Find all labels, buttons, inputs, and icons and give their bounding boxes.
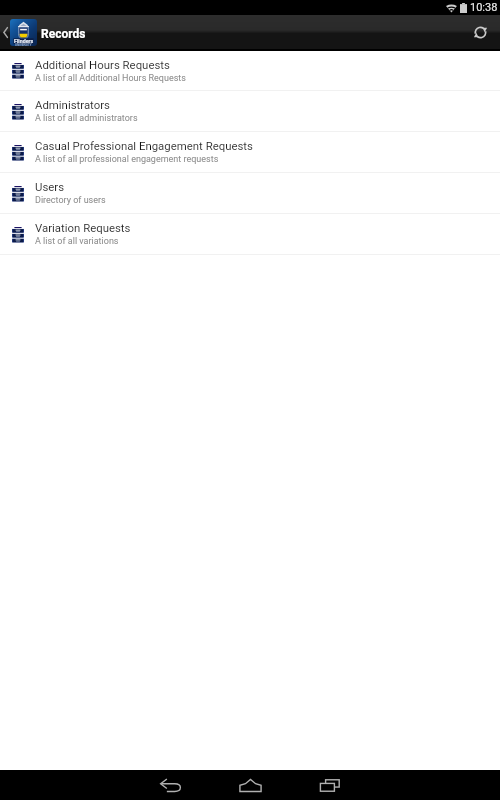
staticText: Variation Requests	[35, 221, 131, 234]
staticText: Administrators	[35, 98, 110, 111]
button[interactable]: Casual Professional Engagement Requests	[0, 132, 500, 173]
staticText: A list of all variations	[35, 236, 119, 247]
button[interactable]: Back	[140, 770, 200, 800]
staticText: Casual Professional Engagement Requests	[35, 139, 253, 152]
staticText: Directory of users	[35, 195, 106, 206]
button[interactable]: Administrators	[0, 91, 500, 132]
staticText: Users	[35, 180, 65, 193]
staticText: Additional Hours Requests	[35, 58, 170, 71]
staticText: Records	[41, 27, 86, 41]
button[interactable]: Home	[220, 770, 280, 800]
staticText: A list of all administrators	[35, 113, 138, 124]
button[interactable]: Refresh	[460, 15, 500, 49]
button[interactable]: Navigate up	[0, 19, 37, 46]
staticText: UNIVERSITY	[15, 43, 32, 46]
staticText: A list of all professional engagement re…	[35, 154, 219, 165]
button[interactable]: Variation Requests	[0, 214, 500, 255]
button[interactable]: Recents	[300, 770, 360, 800]
staticText: A list of all Additional Hours Requests	[35, 73, 186, 84]
staticText: 10:38	[470, 1, 498, 14]
staticText: Flinders	[14, 38, 34, 44]
button[interactable]: Users	[0, 173, 500, 214]
button[interactable]: Additional Hours Requests	[0, 51, 500, 91]
